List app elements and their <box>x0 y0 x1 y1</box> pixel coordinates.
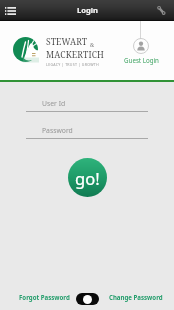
staticText: Password <box>42 126 73 135</box>
staticText: go! <box>75 167 100 189</box>
staticText: LEGACY | TRUST | GROWTH <box>46 62 99 67</box>
button[interactable]: Toggle password option <box>76 293 99 305</box>
button[interactable]: Menu <box>5 0 16 21</box>
staticText: User Id <box>42 99 66 108</box>
button[interactable]: go! <box>68 158 107 197</box>
staticText: Guest Login <box>124 56 159 64</box>
button[interactable]: Forgot Password <box>19 293 70 301</box>
button[interactable]: Guest Login <box>120 38 162 64</box>
staticText: & <box>90 41 95 48</box>
button[interactable]: Call <box>156 0 166 21</box>
staticText: Login <box>77 5 98 15</box>
staticText: MACKERTICH <box>46 49 105 61</box>
button[interactable]: Change Password <box>109 293 163 301</box>
staticText: STEWART <box>46 36 88 48</box>
